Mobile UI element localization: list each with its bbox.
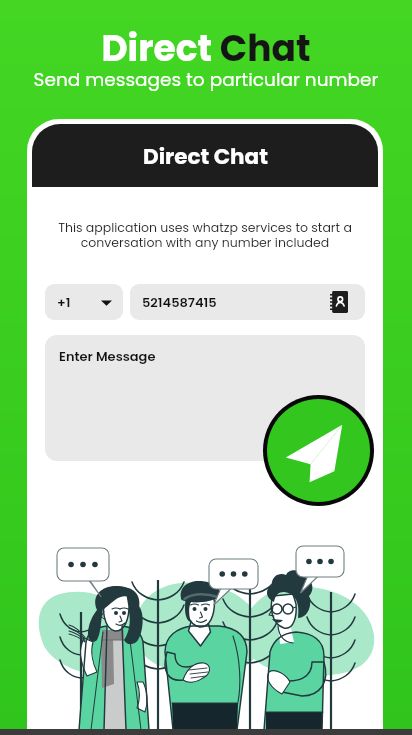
staticText: 5214587415 xyxy=(142,293,330,311)
button[interactable]: +1 xyxy=(45,284,123,320)
staticText: Enter Message xyxy=(59,347,156,365)
staticText: +1 xyxy=(57,293,71,311)
staticText: Send messages to particular number xyxy=(0,67,412,93)
staticText: Direct Chat xyxy=(143,141,268,171)
staticText: This application uses whatzp services to… xyxy=(52,219,358,252)
staticText: Direct Chat xyxy=(0,23,412,73)
button[interactable]: Send message xyxy=(267,399,370,502)
button[interactable]: 5214587415 xyxy=(130,284,365,320)
button[interactable]: Direct Chat xyxy=(32,124,378,187)
button[interactable]: Choose contact xyxy=(330,291,348,313)
button[interactable]: Enter Message xyxy=(45,335,365,461)
